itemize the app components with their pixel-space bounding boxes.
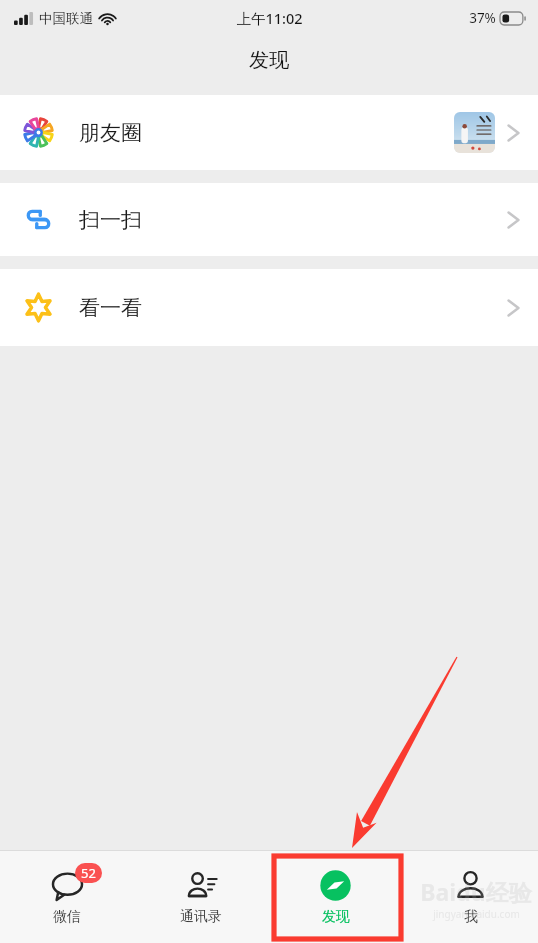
staticText: 我 [464, 908, 478, 926]
button[interactable]: 看一看 [0, 269, 538, 346]
staticText: 37% [469, 9, 496, 27]
staticText: 52 [81, 864, 96, 882]
button[interactable]: 通讯录 [134, 851, 268, 943]
button[interactable]: 朋友圈 [0, 95, 538, 170]
staticText: jingyan.baidu.com [433, 907, 520, 921]
staticText: 中国联通 [39, 10, 93, 27]
staticText: Baidu经验 [420, 876, 532, 907]
button[interactable]: 发现 [268, 851, 403, 943]
staticText: 发现 [249, 48, 289, 73]
staticText: 上午11:02 [236, 8, 303, 28]
button[interactable]: 微信 [0, 851, 134, 943]
staticText: 扫一扫 [79, 207, 142, 233]
staticText: 发现 [322, 908, 350, 926]
other: 我 [454, 869, 487, 902]
other: 微信 [51, 869, 84, 902]
button[interactable]: 扫一扫 [0, 183, 538, 256]
other: 发现 [319, 869, 352, 902]
staticText: 看一看 [79, 295, 142, 321]
staticText: 通讯录 [180, 908, 222, 926]
button[interactable]: 我 [403, 851, 538, 943]
staticText: 微信 [53, 908, 81, 926]
other: 通讯录 [185, 869, 218, 902]
staticText: 朋友圈 [79, 120, 142, 146]
